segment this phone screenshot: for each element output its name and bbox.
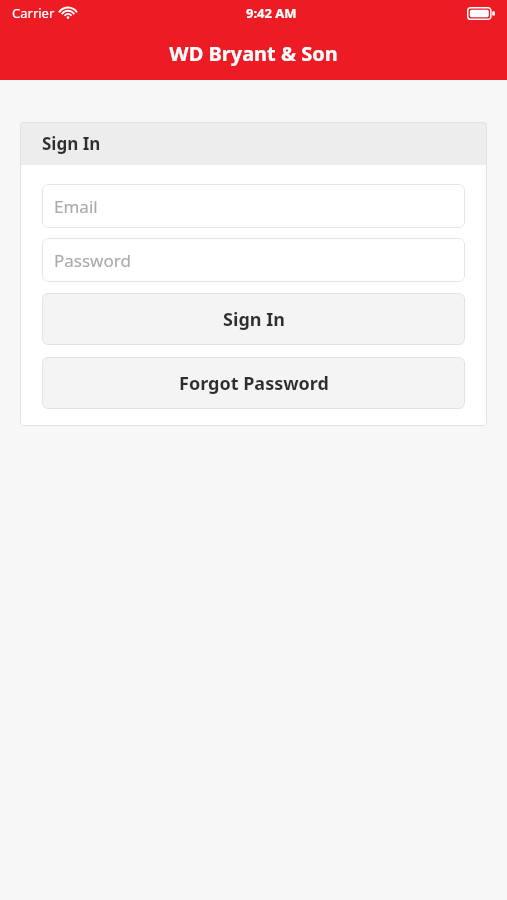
staticText: Carrier xyxy=(12,4,55,22)
staticText: 9:42 AM xyxy=(246,4,297,22)
staticText: Sign In xyxy=(42,132,101,155)
staticText: Forgot Password xyxy=(179,371,329,396)
staticText: Password xyxy=(54,249,131,272)
staticText: Sign In xyxy=(223,307,285,332)
staticText: WD Bryant & Son xyxy=(169,40,338,67)
button[interactable]: Forgot Password xyxy=(42,357,465,409)
button[interactable]: Password xyxy=(42,238,465,282)
staticText: Email xyxy=(54,195,98,218)
button[interactable]: Email xyxy=(42,184,465,228)
button[interactable]: Sign In xyxy=(42,293,465,345)
other: Wi-Fi signal xyxy=(60,7,76,19)
other: Battery full xyxy=(467,7,495,20)
